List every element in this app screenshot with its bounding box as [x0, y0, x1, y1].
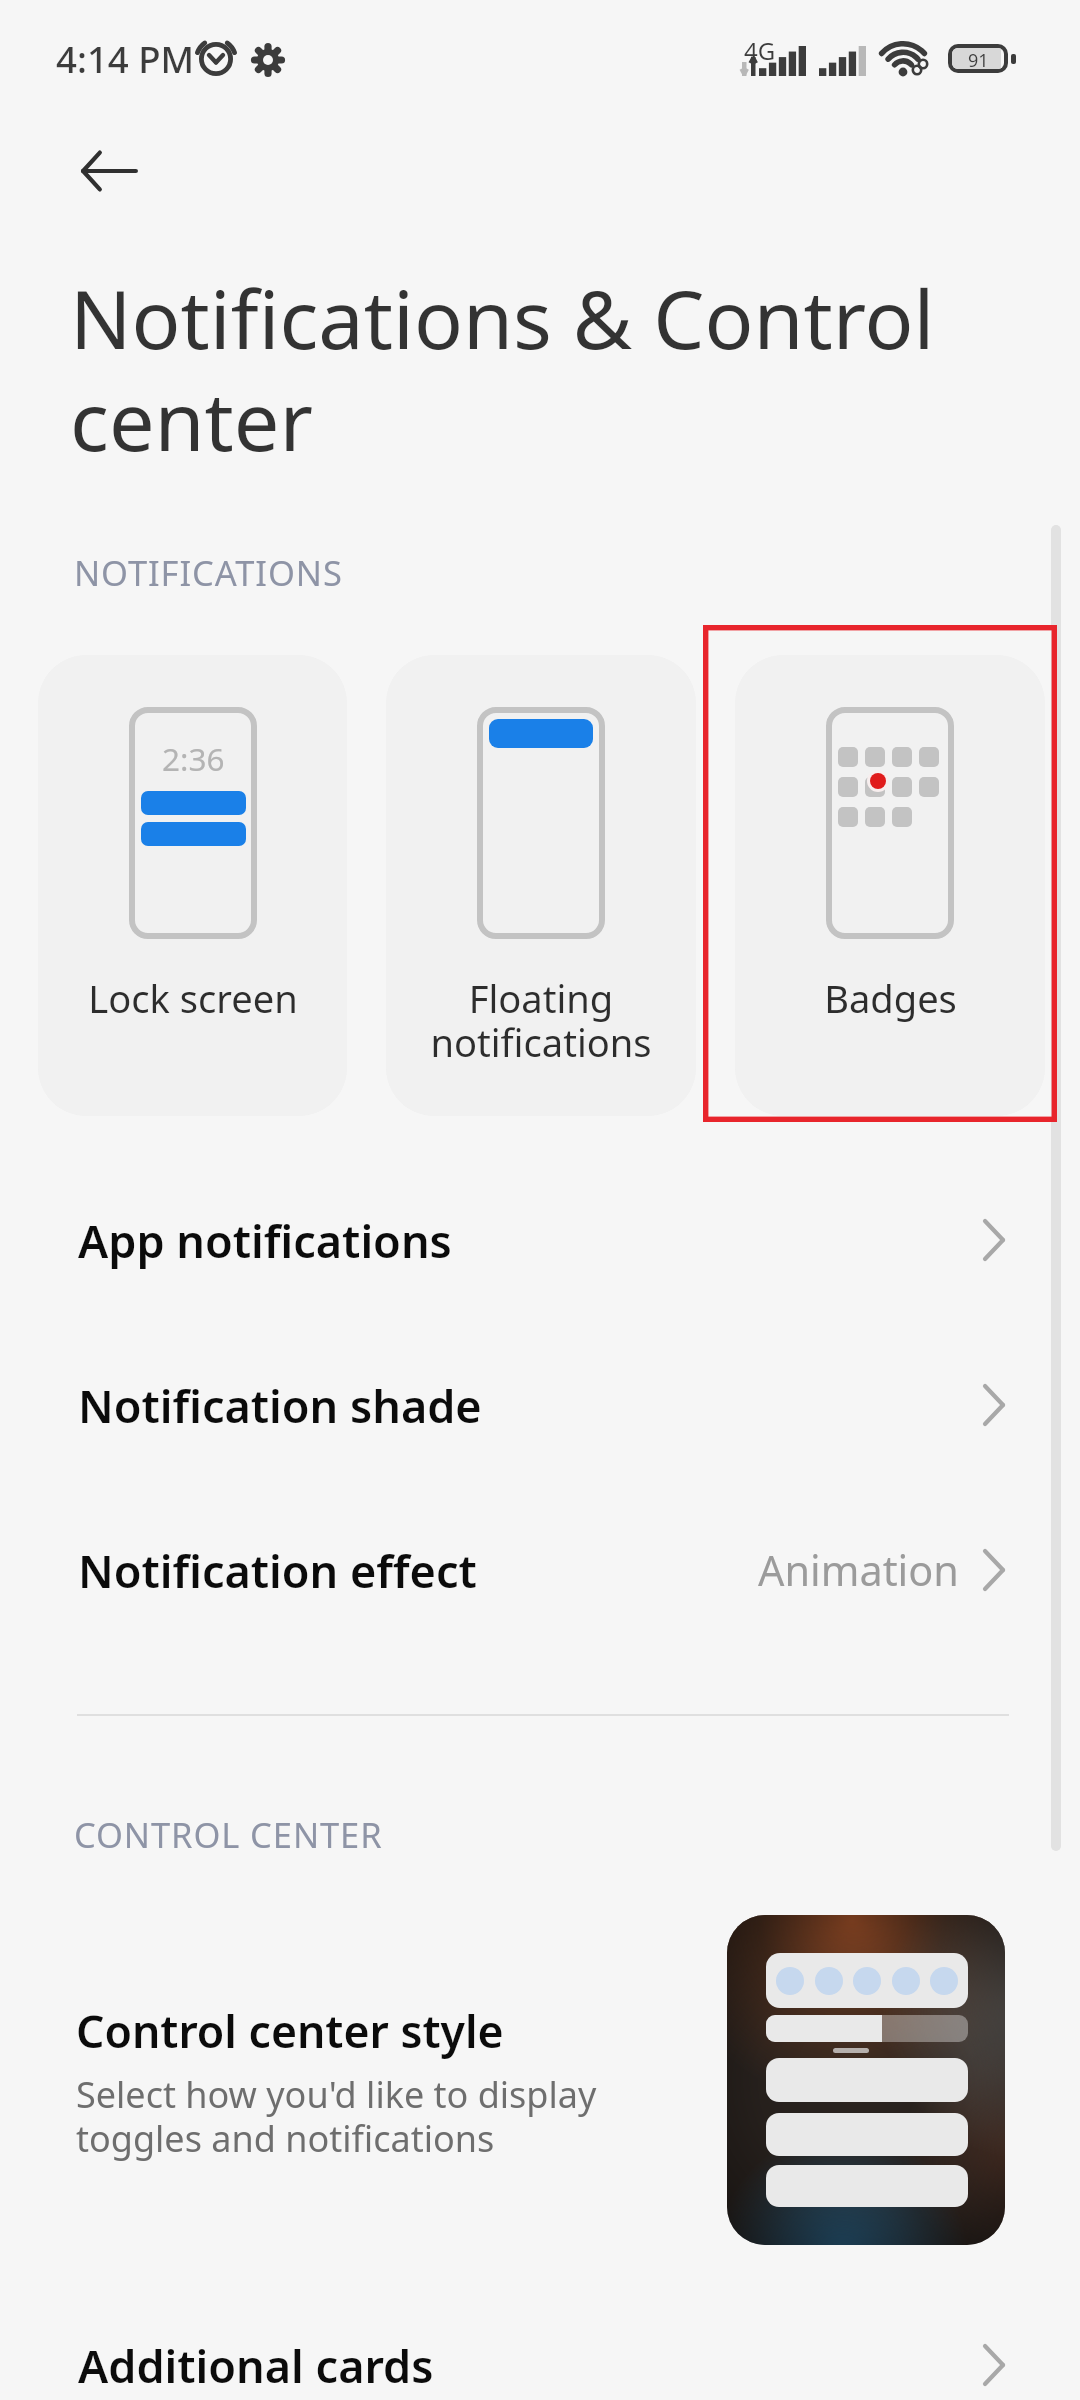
- staticText: Additional cards: [78, 2335, 434, 2396]
- button[interactable]: Back: [52, 114, 166, 228]
- staticText: Control center style: [76, 2000, 504, 2061]
- staticText: Notification shade: [78, 1375, 482, 1436]
- staticText: Animation: [758, 1542, 959, 1598]
- button[interactable]: App notifications: [0, 1185, 1080, 1295]
- staticText: 4:14 PM: [56, 34, 195, 84]
- button[interactable]: Control center style: [0, 1895, 1080, 2265]
- button[interactable]: Notification effect: [0, 1515, 1080, 1625]
- staticText: Badges: [824, 972, 957, 1024]
- staticText: 4G: [744, 34, 776, 67]
- staticText: Lock screen: [88, 972, 298, 1024]
- staticText: Select how you'd like to display toggles…: [76, 2070, 597, 2162]
- staticText: Floating notifications: [430, 972, 652, 1068]
- button[interactable]: Notification shade: [0, 1350, 1080, 1460]
- staticText: 2:36: [162, 737, 225, 780]
- button[interactable]: Badges: [735, 655, 1045, 1116]
- staticText: 91: [968, 48, 989, 69]
- staticText: App notifications: [78, 1210, 452, 1271]
- staticText: NOTIFICATIONS: [74, 549, 343, 596]
- button[interactable]: Additional cards: [0, 2310, 1080, 2400]
- staticText: CONTROL CENTER: [74, 1811, 383, 1858]
- staticText: Notifications & Control center: [70, 262, 1030, 475]
- button[interactable]: Floating notifications: [386, 655, 696, 1116]
- button[interactable]: 2:36: [38, 655, 347, 1116]
- staticText: Notification effect: [78, 1540, 477, 1601]
